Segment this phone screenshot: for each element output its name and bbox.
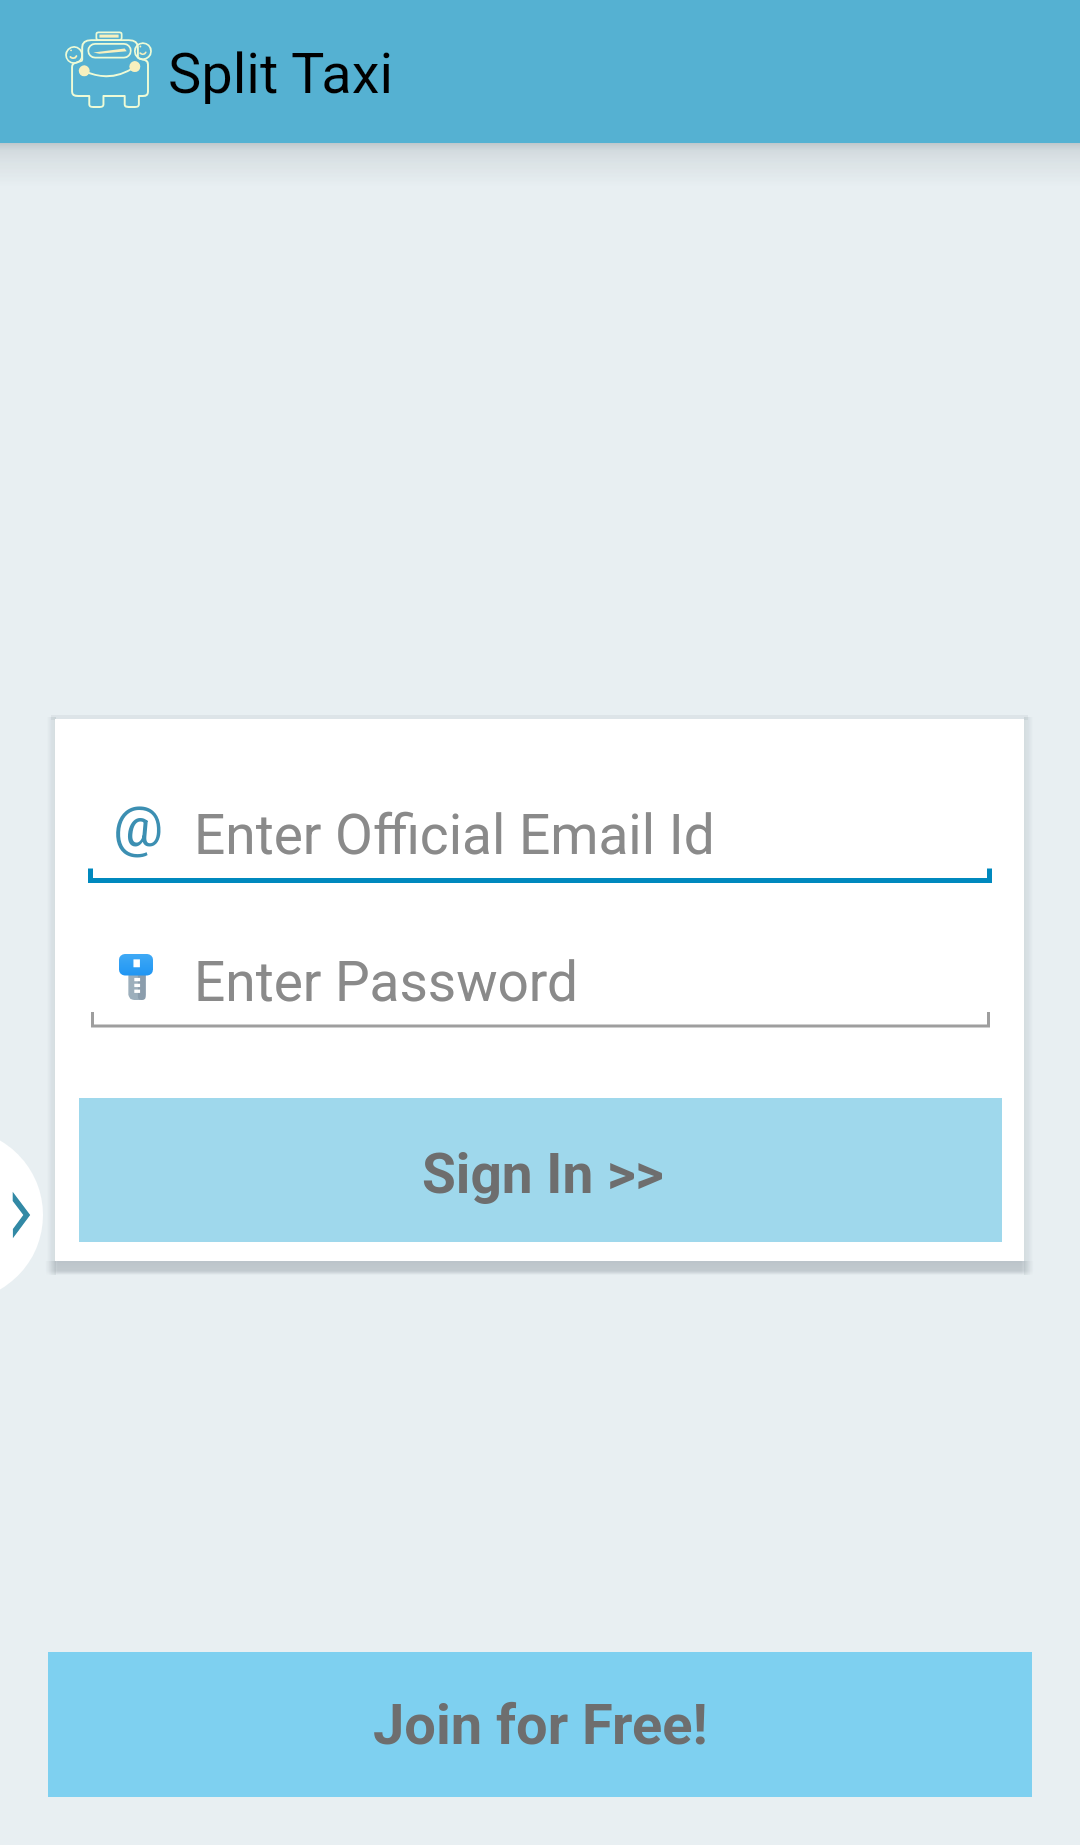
staticText: Split Taxi xyxy=(168,41,394,107)
staticText: Enter Password xyxy=(194,950,579,1014)
staticText: Sign In >> xyxy=(422,1142,664,1206)
button[interactable]: Join for Free! xyxy=(48,1652,1032,1797)
staticText: Join for Free! xyxy=(373,1692,708,1758)
staticText: @ xyxy=(113,794,164,860)
button[interactable]: Open navigation drawer xyxy=(0,1129,43,1301)
button[interactable]: @ xyxy=(88,789,992,885)
staticText: Enter Official Email Id xyxy=(194,803,715,867)
button[interactable]: Sign In >> xyxy=(79,1098,1002,1242)
button[interactable]: Enter Password xyxy=(91,941,990,1031)
